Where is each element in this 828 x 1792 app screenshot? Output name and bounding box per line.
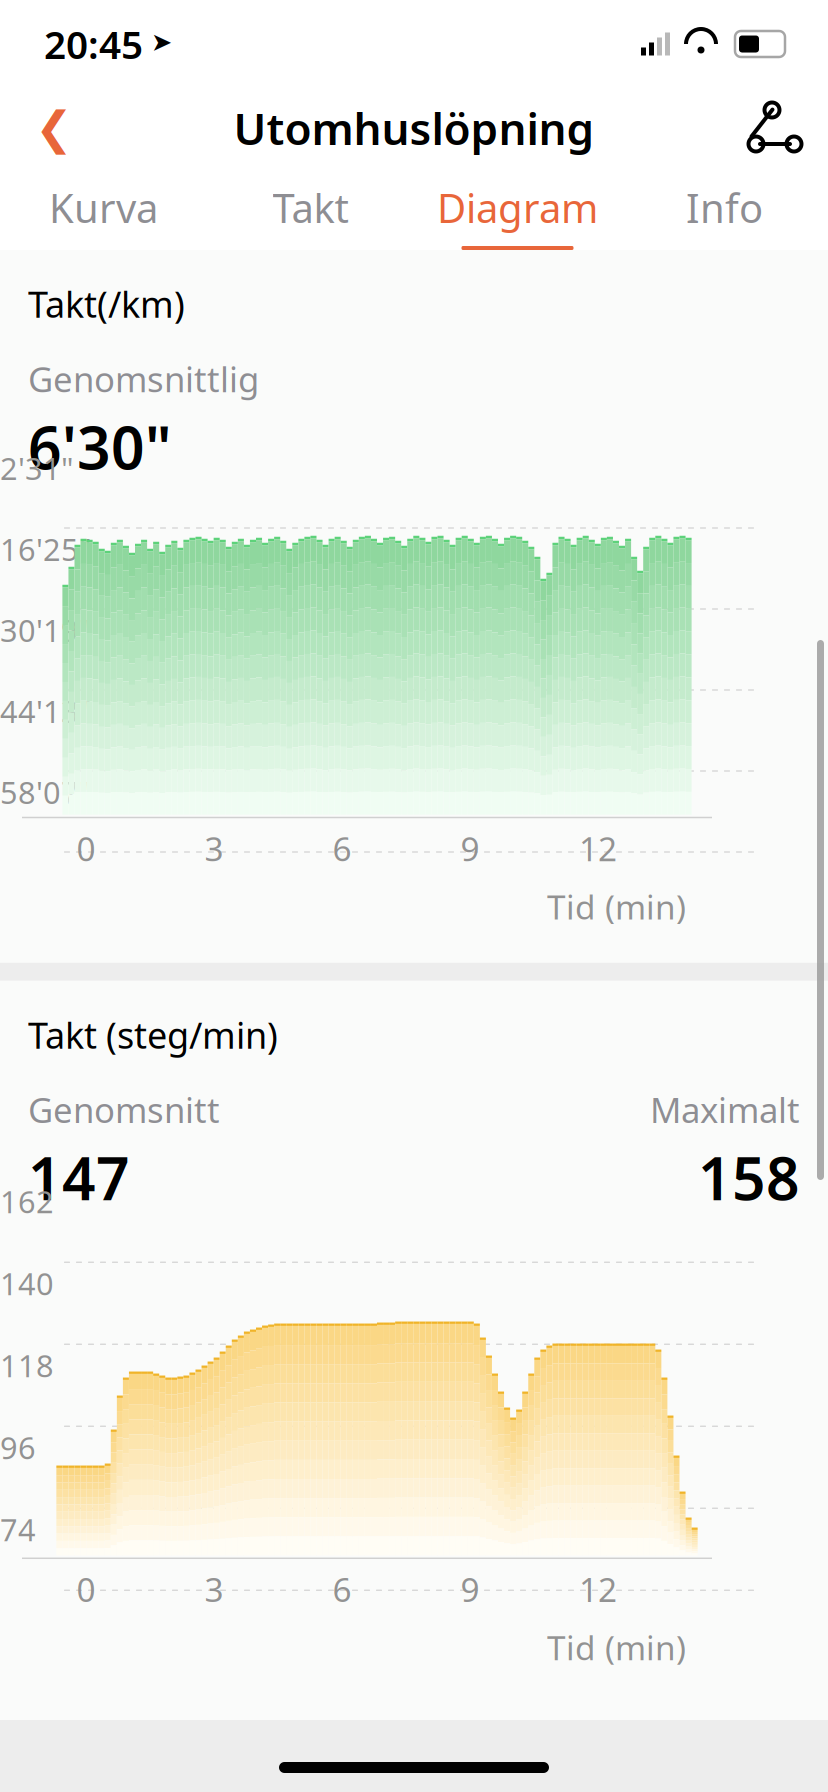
staticText: 6 [332,1567,351,1611]
staticText: 3 [204,1567,223,1611]
staticText: Tid (min) [547,1625,686,1670]
staticText: 140 [0,1263,54,1304]
staticText: 147 [28,1139,130,1216]
staticText: Maximalt [650,1087,800,1133]
staticText: Diagram [437,181,598,234]
staticText: Tid (min) [547,884,686,929]
staticText: 9 [460,1567,479,1611]
staticText: 12 [579,1567,617,1611]
button[interactable]: Info [621,168,828,250]
staticText: Genomsnittlig [28,356,259,402]
staticText: Genomsnitt [28,1087,220,1133]
staticText: Utomhuslöpning [233,99,594,157]
staticText: Takt(/km) [28,280,185,328]
staticText: 6'30" [28,408,172,486]
staticText: 74 [0,1509,36,1550]
button[interactable]: Kurva [0,168,207,250]
staticText: 162 [0,1181,54,1222]
staticText: Takt (steg/min) [28,1011,278,1059]
staticText: 0 [76,826,95,870]
staticText: 158 [698,1139,800,1216]
staticText: ➤ [151,28,172,56]
staticText: 44'13" [0,691,92,731]
staticText: ❮ [35,102,73,154]
staticText: 96 [0,1427,36,1468]
button[interactable]: Diagram [414,168,621,250]
staticText: 6 [332,826,351,870]
button[interactable]: Dela rutt [730,92,806,164]
staticText: 9 [460,826,479,870]
staticText: 118 [0,1345,54,1386]
button[interactable]: Tillbaka [18,92,90,164]
staticText: 3 [204,826,223,870]
staticText: 30'19" [0,610,92,650]
staticText: 20:45 [44,18,143,70]
button[interactable]: Takt [207,168,414,250]
staticText: 12 [579,826,617,870]
staticText: 0 [76,1567,95,1611]
staticText: 16'25" [0,529,92,569]
staticText: Kurva [49,181,158,234]
staticText: Takt [272,181,348,234]
staticText: 2'31" [0,448,74,488]
staticText: Info [686,181,763,234]
staticText: 58'07" [0,772,92,812]
